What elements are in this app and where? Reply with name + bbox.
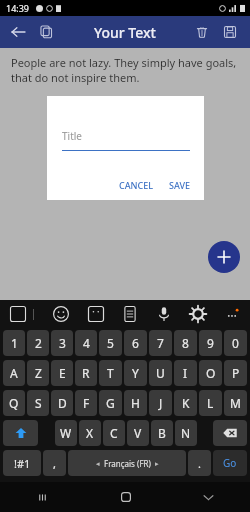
staticText: K xyxy=(182,395,190,411)
staticText: T xyxy=(107,365,114,381)
staticText: 6 xyxy=(132,335,139,351)
button[interactable]: V xyxy=(127,420,149,446)
button[interactable]: Translate xyxy=(10,306,26,322)
staticText: SAVE xyxy=(169,179,191,191)
staticText: J xyxy=(159,395,163,411)
button[interactable]: More options xyxy=(224,306,240,322)
staticText: ▸ xyxy=(155,460,159,468)
button[interactable]: 7 xyxy=(149,330,172,356)
button[interactable]: G xyxy=(99,390,122,416)
button[interactable]: 1 xyxy=(3,330,25,356)
button[interactable]: B xyxy=(151,420,173,446)
staticText: M xyxy=(230,395,241,411)
staticText: . xyxy=(198,456,201,471)
button[interactable]: Delete xyxy=(190,20,214,44)
button[interactable]: Hide keyboard xyxy=(167,482,250,512)
staticText: D xyxy=(58,395,67,411)
button[interactable]: 5 xyxy=(99,330,122,356)
button[interactable]: ◂ xyxy=(68,450,186,476)
button[interactable]: 9 xyxy=(199,330,222,356)
button[interactable]: SAVE xyxy=(164,176,196,194)
staticText: C xyxy=(110,425,118,441)
staticText: P xyxy=(232,365,240,381)
button[interactable]: I xyxy=(174,360,197,386)
staticText: U xyxy=(156,365,165,381)
button[interactable]: , xyxy=(43,450,66,476)
button[interactable]: Shift xyxy=(3,420,38,446)
staticText: !#1 xyxy=(14,456,31,471)
staticText: Go xyxy=(223,456,237,470)
button[interactable]: Recents xyxy=(0,482,84,512)
button[interactable]: F xyxy=(75,390,97,416)
button[interactable]: H xyxy=(124,390,147,416)
button[interactable]: P xyxy=(224,360,247,386)
button[interactable]: E xyxy=(51,360,73,386)
button[interactable]: Backspace xyxy=(213,420,247,446)
button[interactable]: Y xyxy=(124,360,147,386)
button[interactable]: U xyxy=(149,360,172,386)
button[interactable]: S xyxy=(27,390,49,416)
button[interactable]: Home xyxy=(84,482,167,512)
staticText: 1 xyxy=(11,335,18,351)
button[interactable]: Save xyxy=(218,20,242,44)
staticText: A xyxy=(10,365,18,381)
staticText: ◂ xyxy=(96,460,100,468)
staticText: Q xyxy=(9,395,19,411)
button[interactable]: D xyxy=(51,390,73,416)
staticText: , xyxy=(53,456,56,471)
staticText: 2 xyxy=(35,335,42,351)
button[interactable]: X xyxy=(79,420,101,446)
staticText: X xyxy=(86,425,94,441)
button[interactable]: 4 xyxy=(75,330,97,356)
staticText: 14:39 xyxy=(6,2,30,14)
button[interactable]: Stickers xyxy=(88,306,104,322)
staticText: 0 xyxy=(232,335,239,351)
button[interactable]: T xyxy=(99,360,122,386)
button[interactable]: Back xyxy=(6,20,30,44)
button[interactable]: 3 xyxy=(51,330,73,356)
staticText: Your Text xyxy=(94,23,156,42)
staticText: Y xyxy=(132,365,139,381)
staticText: CANCEL xyxy=(119,179,154,191)
button[interactable]: N xyxy=(175,420,197,446)
button[interactable]: L xyxy=(199,390,222,416)
button[interactable]: C xyxy=(103,420,125,446)
staticText: F xyxy=(83,395,90,411)
staticText: 5 xyxy=(107,335,114,351)
button[interactable]: O xyxy=(199,360,222,386)
button[interactable]: M xyxy=(224,390,247,416)
button[interactable]: 8 xyxy=(174,330,197,356)
button[interactable]: Z xyxy=(27,360,49,386)
staticText: B xyxy=(158,425,166,441)
staticText: R xyxy=(82,365,90,381)
button[interactable]: Copy xyxy=(34,20,58,44)
staticText: N xyxy=(181,425,191,441)
button[interactable]: Go xyxy=(213,450,247,476)
button[interactable]: K xyxy=(174,390,197,416)
button[interactable]: R xyxy=(75,360,97,386)
staticText: Title xyxy=(62,129,82,143)
button[interactable]: A xyxy=(3,360,25,386)
button[interactable]: 6 xyxy=(124,330,147,356)
button[interactable]: . xyxy=(188,450,211,476)
button[interactable]: !#1 xyxy=(3,450,41,476)
staticText: 8 xyxy=(182,335,189,351)
staticText: E xyxy=(59,365,66,381)
button[interactable]: 0 xyxy=(224,330,247,356)
button[interactable]: Add xyxy=(208,241,240,273)
button[interactable]: CANCEL xyxy=(114,176,159,194)
staticText: G xyxy=(106,395,115,411)
button[interactable]: Q xyxy=(3,390,25,416)
staticText: 3 xyxy=(59,335,66,351)
button[interactable]: Settings xyxy=(190,306,206,322)
button[interactable]: Voice input xyxy=(156,306,172,322)
button[interactable]: Emoji xyxy=(53,306,69,322)
button[interactable]: W xyxy=(55,420,77,446)
staticText: I xyxy=(183,365,188,381)
staticText: 4 xyxy=(83,335,90,351)
button[interactable]: J xyxy=(149,390,172,416)
button[interactable]: 2 xyxy=(27,330,49,356)
button[interactable]: Clipboard xyxy=(122,306,138,322)
staticText: 7 xyxy=(157,335,164,351)
staticText: Z xyxy=(35,365,42,381)
